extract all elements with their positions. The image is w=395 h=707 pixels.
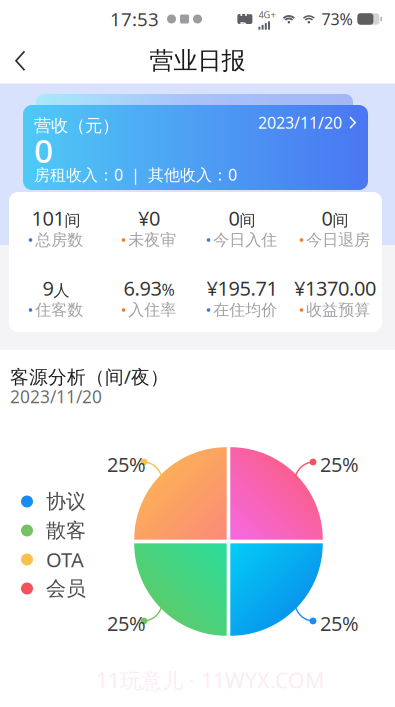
staticText: 73% bbox=[321, 8, 352, 30]
staticText: 房租收入：0 | 其他收入：0 bbox=[34, 164, 237, 185]
staticText: 未夜审 bbox=[128, 230, 176, 250]
staticText: % bbox=[161, 279, 174, 300]
staticText: 营收（元） bbox=[34, 115, 119, 136]
staticText: 9 bbox=[42, 275, 53, 301]
staticText: 2023/11/20 bbox=[10, 385, 102, 408]
staticText: 会员 bbox=[46, 576, 86, 601]
staticText: 0 bbox=[34, 128, 53, 172]
staticText: 0 bbox=[321, 205, 332, 231]
staticText: 17:53 bbox=[110, 7, 159, 31]
staticText: 今日退房 bbox=[306, 230, 370, 250]
staticText: 2023/11/20 bbox=[258, 112, 342, 133]
staticText: 散客 bbox=[46, 518, 86, 543]
staticText: 客源分析（间/夜） bbox=[10, 364, 169, 389]
staticText: ¥0 bbox=[138, 205, 160, 231]
button[interactable]: Back bbox=[0, 38, 44, 83]
staticText: 总房数 bbox=[35, 230, 83, 250]
staticText: 11玩意儿 · 11WYX.COM bbox=[96, 666, 324, 694]
staticText: 6.93 bbox=[123, 275, 161, 301]
staticText: 在住均价 bbox=[213, 300, 277, 320]
staticText: OTA bbox=[46, 546, 84, 573]
staticText: 收益预算 bbox=[306, 300, 370, 320]
button[interactable]: 2023/11/20 bbox=[252, 107, 363, 138]
staticText: 今日入住 bbox=[213, 230, 277, 250]
staticText: 4G+ bbox=[258, 8, 275, 21]
staticText: ¥195.71 bbox=[206, 275, 277, 301]
staticText: ¥1370.00 bbox=[294, 275, 376, 301]
staticText: 营业日报 bbox=[149, 46, 245, 75]
staticText: 间 bbox=[332, 211, 348, 230]
staticText: 25% bbox=[107, 610, 146, 637]
staticText: 0 bbox=[228, 205, 239, 231]
staticText: 入住率 bbox=[128, 300, 176, 320]
staticText: 25% bbox=[320, 451, 359, 478]
staticText: 101 bbox=[31, 205, 64, 231]
staticText: 住客数 bbox=[35, 300, 83, 320]
staticText: 间 bbox=[64, 211, 80, 230]
staticText: HD bbox=[239, 5, 250, 33]
staticText: 25% bbox=[107, 451, 146, 478]
staticText: 间 bbox=[239, 211, 255, 230]
staticText: 人 bbox=[53, 281, 69, 300]
staticText: 25% bbox=[320, 610, 359, 637]
staticText: 协议 bbox=[46, 489, 86, 514]
